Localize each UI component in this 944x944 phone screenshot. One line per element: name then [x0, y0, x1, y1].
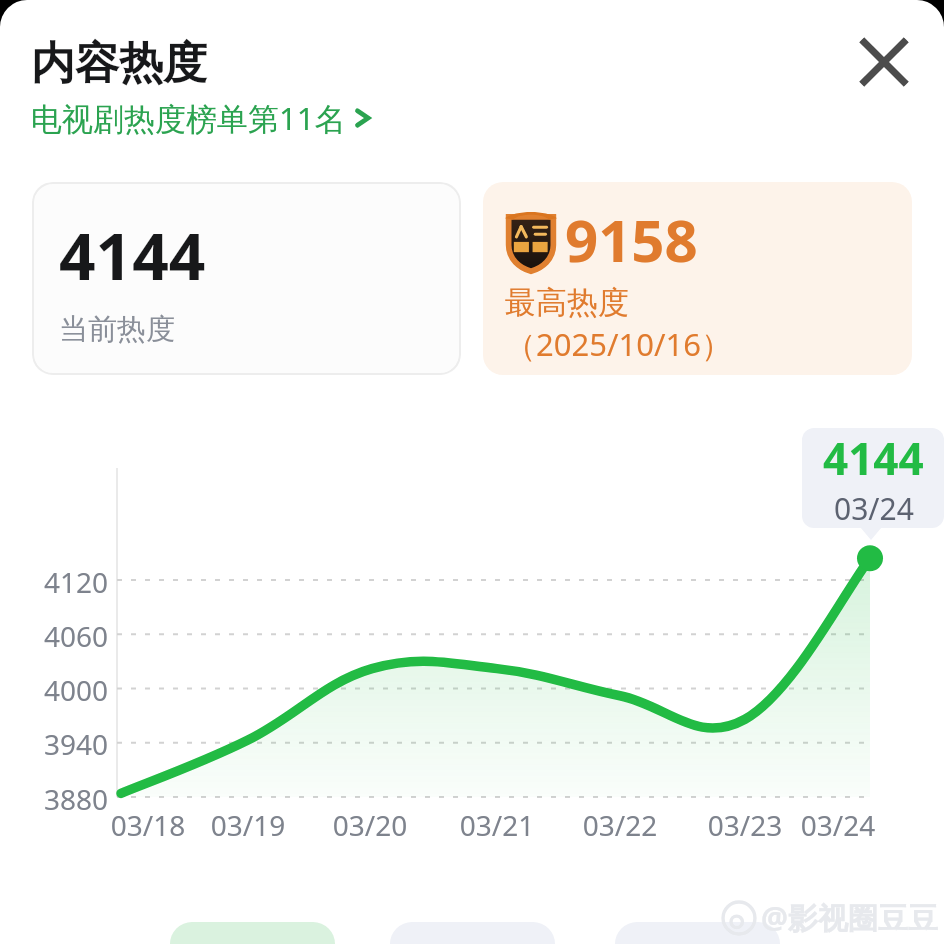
staticText: 03/18 [100, 806, 196, 844]
staticText: 03/22 [572, 806, 668, 844]
button[interactable]: 电视剧热度榜单第11名 [31, 97, 373, 139]
staticText: 4144 [823, 428, 924, 488]
staticText: 4060 [36, 617, 108, 655]
staticText: （2025/10/16） [505, 323, 732, 365]
button[interactable]: 关闭 [852, 30, 916, 94]
button[interactable]: 4144 [32, 182, 461, 375]
staticText: 3940 [36, 725, 108, 763]
staticText: 03/20 [322, 806, 418, 844]
staticText: 最高热度 [505, 283, 629, 322]
staticText: 03/24 [834, 488, 914, 528]
button[interactable] [390, 922, 555, 944]
staticText: 03/21 [449, 806, 545, 844]
staticText: 内容热度 [31, 36, 207, 91]
staticText: 03/24 [790, 806, 886, 844]
button[interactable] [615, 922, 780, 944]
button[interactable] [170, 922, 335, 944]
button[interactable]: 9158 [483, 182, 912, 375]
staticText: 电视剧热度榜单第11名 [31, 97, 346, 139]
staticText: 当前热度 [59, 311, 175, 348]
staticText: @影视圈豆豆 [761, 897, 938, 938]
staticText: 4144 [59, 212, 206, 299]
staticText: 03/19 [200, 806, 296, 844]
staticText: 4000 [36, 671, 108, 709]
staticText: 03/23 [697, 806, 793, 844]
staticText: 9158 [565, 200, 698, 279]
staticText: 3880 [36, 780, 108, 818]
staticText: 4120 [36, 563, 108, 601]
